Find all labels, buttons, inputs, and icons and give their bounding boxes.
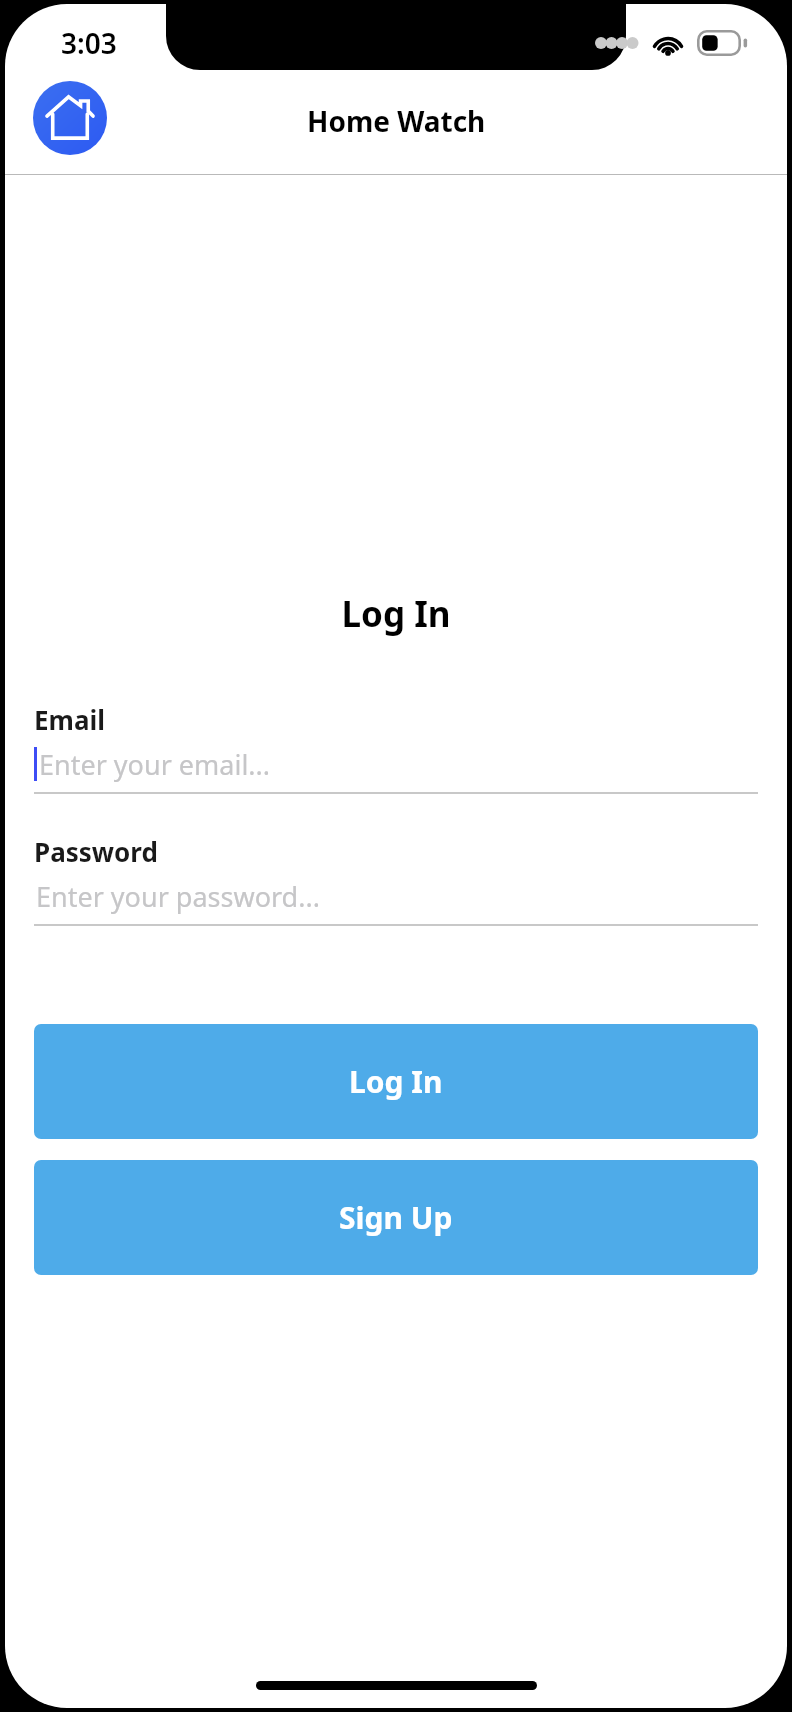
staticText: Email — [34, 702, 106, 737]
staticText: Password — [34, 834, 158, 869]
staticText: Log In — [5, 590, 787, 638]
staticText: Enter your password... — [36, 878, 320, 915]
staticText: 3:03 — [61, 24, 117, 62]
button[interactable]: Sign Up — [34, 1160, 758, 1275]
staticText: Log In — [349, 1061, 443, 1102]
button[interactable]: Password — [34, 834, 758, 926]
button[interactable]: Log In — [34, 1024, 758, 1139]
staticText: Home Watch — [307, 102, 486, 140]
staticText: Enter your email... — [39, 746, 271, 783]
button[interactable]: Home — [33, 81, 107, 155]
button[interactable]: Email — [34, 702, 758, 794]
staticText: Sign Up — [339, 1197, 453, 1238]
